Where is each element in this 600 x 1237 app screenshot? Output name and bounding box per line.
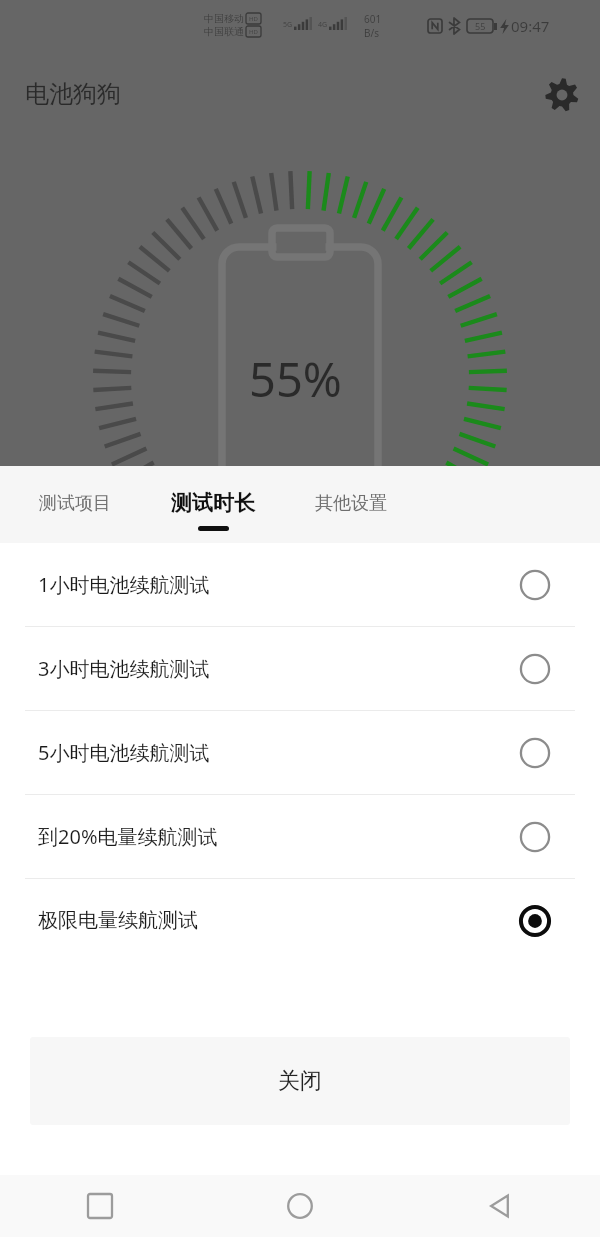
staticText: 极限电量续航测试 bbox=[38, 908, 198, 933]
staticText: 5G bbox=[283, 20, 293, 30]
button[interactable]: Settings bbox=[537, 70, 587, 120]
button[interactable]: Home bbox=[200, 1175, 400, 1237]
button[interactable]: 到20%电量续航测试 bbox=[0, 795, 600, 878]
staticText: 1小时电池续航测试 bbox=[38, 571, 210, 598]
staticText: 5小时电池续航测试 bbox=[38, 739, 210, 766]
button[interactable]: Recent apps bbox=[0, 1175, 200, 1237]
staticText: 55 bbox=[475, 20, 486, 32]
staticText: HD bbox=[249, 28, 258, 36]
staticText: 测试时长 bbox=[171, 490, 255, 516]
staticText: B/s bbox=[364, 26, 380, 40]
staticText: 4G bbox=[318, 20, 328, 30]
staticText: 关闭 bbox=[278, 1067, 322, 1095]
staticText: 601 bbox=[364, 12, 382, 26]
staticText: 测试项目 bbox=[39, 492, 111, 515]
staticText: 到20%电量续航测试 bbox=[38, 823, 218, 850]
button[interactable]: 测试时长 bbox=[144, 466, 282, 543]
staticText: HD bbox=[249, 15, 258, 23]
button[interactable]: 关闭 bbox=[30, 1037, 570, 1125]
staticText: 电池狗狗 bbox=[25, 79, 121, 109]
button[interactable]: 3小时电池续航测试 bbox=[0, 627, 600, 710]
staticText: 其他设置 bbox=[315, 492, 387, 515]
staticText: 中国移动 bbox=[204, 12, 244, 25]
button[interactable]: 极限电量续航测试 bbox=[0, 879, 600, 962]
button[interactable]: Back bbox=[400, 1175, 600, 1237]
staticText: 中国联通 bbox=[204, 25, 244, 38]
button[interactable]: 1小时电池续航测试 bbox=[0, 543, 600, 626]
button[interactable]: 5小时电池续航测试 bbox=[0, 711, 600, 794]
button[interactable]: 测试项目 bbox=[6, 466, 144, 543]
staticText: 09:47 bbox=[511, 16, 550, 36]
staticText: 55% bbox=[249, 347, 342, 411]
button[interactable]: 其他设置 bbox=[282, 466, 420, 543]
staticText: 3小时电池续航测试 bbox=[38, 655, 210, 682]
